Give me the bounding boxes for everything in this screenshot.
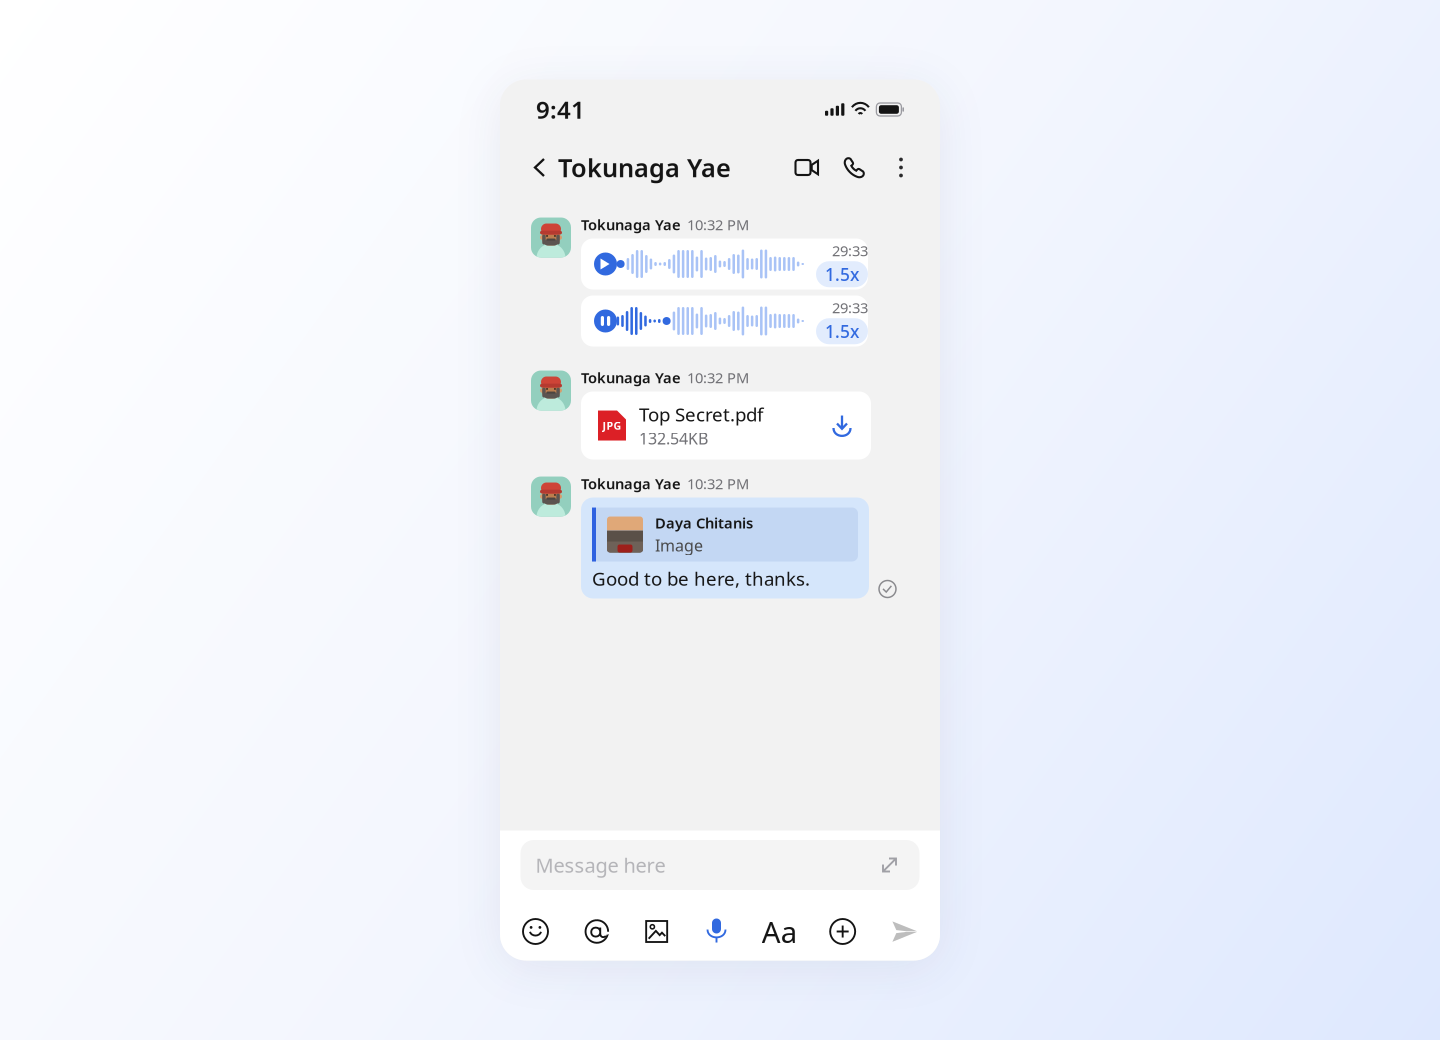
button[interactable]: Back <box>528 151 552 183</box>
button[interactable]: More options <box>892 151 910 183</box>
staticText: 29:33 <box>832 241 868 260</box>
staticText: Daya Chitanis <box>655 513 753 533</box>
staticText: 1.5x <box>825 320 859 343</box>
button[interactable]: Mention <box>584 918 610 944</box>
staticText: Image <box>655 535 703 556</box>
button[interactable]: Video call <box>791 151 823 183</box>
staticText: Top Secret.pdf <box>639 402 763 427</box>
button[interactable]: Text format <box>764 918 794 945</box>
staticText: Aa <box>762 912 797 951</box>
button[interactable]: JPG <box>581 391 871 459</box>
button[interactable]: Message here <box>520 840 919 890</box>
button[interactable]: Send <box>891 918 918 945</box>
staticText: JPG <box>602 418 621 433</box>
staticText: Tokunaga Yae <box>581 474 681 493</box>
staticText: 29:33 <box>832 298 868 317</box>
button[interactable]: Add attachment <box>829 918 856 945</box>
button[interactable]: Voice message <box>703 918 729 944</box>
staticText: 1.5x <box>825 263 859 286</box>
staticText: 10:32 PM <box>687 474 749 493</box>
staticText: Tokunaga Yae <box>581 215 681 234</box>
staticText: Tokunaga Yae <box>558 151 731 184</box>
staticText: Message here <box>535 852 665 878</box>
button[interactable]: 29:33 <box>581 238 868 289</box>
button[interactable]: Emoji <box>522 918 549 945</box>
staticText: 10:32 PM <box>687 215 749 234</box>
staticText: 10:32 PM <box>687 368 749 387</box>
button[interactable]: Photos <box>645 919 669 943</box>
staticText: 9:41 <box>536 94 585 125</box>
staticText: Tokunaga Yae <box>581 368 681 387</box>
staticText: Good to be here, thanks. <box>592 566 810 591</box>
button[interactable]: 29:33 <box>581 295 868 346</box>
staticText: 132.54KB <box>639 428 708 449</box>
button[interactable]: Voice call <box>841 151 868 183</box>
